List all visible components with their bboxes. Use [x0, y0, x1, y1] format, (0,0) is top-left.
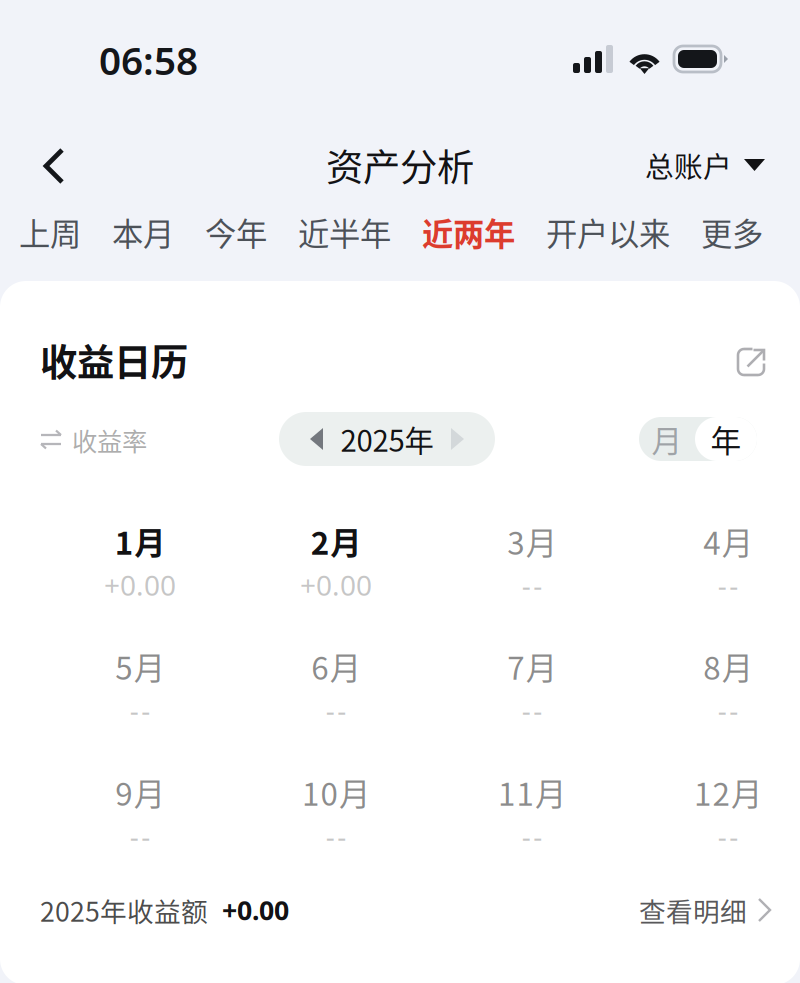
- staticText: 更多: [701, 209, 763, 255]
- staticText: --: [718, 566, 738, 604]
- button[interactable]: 上周: [19, 196, 81, 268]
- staticText: 2025年收益额: [40, 891, 208, 929]
- staticText: 查看明细: [639, 891, 747, 929]
- staticText: 3月: [507, 518, 557, 564]
- button[interactable]: 6月: [256, 647, 416, 727]
- staticText: +0.00: [104, 566, 176, 604]
- staticText: 2025年: [340, 418, 433, 460]
- button[interactable]: Previous year: [301, 412, 332, 466]
- button[interactable]: 11月: [452, 773, 612, 853]
- staticText: 1月: [115, 518, 165, 564]
- button[interactable]: 3月: [452, 522, 612, 602]
- staticText: 11月: [498, 769, 566, 815]
- button[interactable]: 月: [639, 417, 695, 461]
- button[interactable]: 本月: [112, 196, 174, 268]
- button[interactable]: Back: [18, 136, 90, 196]
- staticText: 收益日历: [40, 333, 188, 387]
- button[interactable]: 5月: [60, 647, 220, 727]
- button[interactable]: 今年: [205, 196, 267, 268]
- button[interactable]: 10月: [256, 773, 416, 853]
- staticText: 今年: [205, 209, 267, 255]
- staticText: 12月: [694, 769, 762, 815]
- button[interactable]: 1月: [60, 522, 220, 602]
- staticText: --: [718, 691, 738, 729]
- button[interactable]: 收益率: [40, 418, 190, 462]
- button[interactable]: 查看明细: [602, 884, 772, 936]
- staticText: 06:58: [99, 34, 198, 86]
- button[interactable]: 总账户: [621, 137, 800, 193]
- staticText: 2月: [311, 518, 361, 564]
- staticText: 9月: [115, 769, 165, 815]
- button[interactable]: 4月: [648, 522, 800, 602]
- button[interactable]: 近两年: [422, 196, 515, 268]
- button[interactable]: 7月: [452, 647, 612, 727]
- button[interactable]: 近半年: [298, 196, 391, 268]
- button[interactable]: 开户以来: [546, 196, 670, 268]
- staticText: 8月: [703, 643, 753, 689]
- staticText: 收益率: [72, 422, 147, 458]
- button[interactable]: 年: [695, 417, 757, 461]
- staticText: --: [522, 817, 542, 855]
- staticText: 7月: [507, 643, 557, 689]
- staticText: --: [522, 566, 542, 604]
- staticText: 4月: [703, 518, 753, 564]
- staticText: --: [718, 817, 738, 855]
- staticText: 月: [651, 417, 682, 461]
- button[interactable]: 9月: [60, 773, 220, 853]
- button[interactable]: 12月: [648, 773, 800, 853]
- button[interactable]: 8月: [648, 647, 800, 727]
- staticText: 开户以来: [546, 209, 670, 255]
- staticText: 总账户: [645, 144, 732, 186]
- staticText: 年: [710, 417, 741, 461]
- staticText: +0.00: [222, 892, 289, 928]
- staticText: 资产分析: [326, 138, 474, 192]
- staticText: 近半年: [298, 209, 391, 255]
- staticText: 上周: [19, 209, 81, 255]
- staticText: 近两年: [422, 209, 515, 255]
- staticText: +0.00: [300, 566, 372, 604]
- staticText: --: [130, 817, 150, 855]
- button[interactable]: Open earnings calendar: [728, 339, 774, 385]
- staticText: 5月: [115, 643, 165, 689]
- staticText: 10月: [302, 769, 370, 815]
- staticText: --: [326, 691, 346, 729]
- button[interactable]: 2月: [256, 522, 416, 602]
- button[interactable]: 更多: [701, 196, 763, 268]
- staticText: --: [130, 691, 150, 729]
- staticText: 6月: [311, 643, 361, 689]
- staticText: 本月: [112, 209, 174, 255]
- button[interactable]: Next year: [442, 412, 473, 466]
- staticText: --: [522, 691, 542, 729]
- staticText: --: [326, 817, 346, 855]
